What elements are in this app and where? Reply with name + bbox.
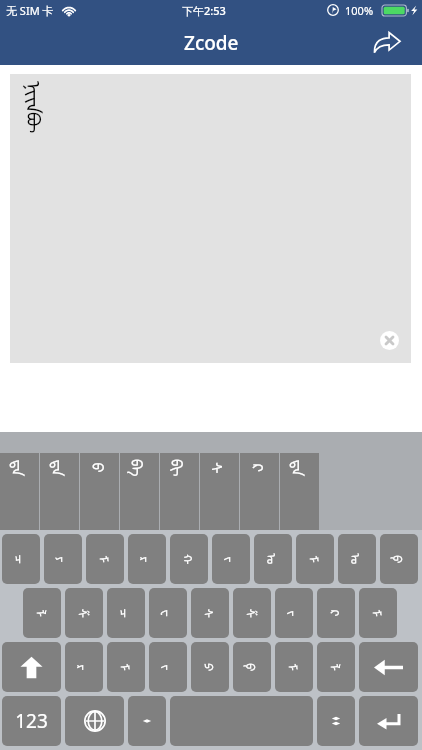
- button[interactable]: ᠺ: [240, 453, 279, 530]
- button[interactable]: ᠺ: [317, 588, 355, 638]
- staticText: ᠫ: [200, 663, 221, 672]
- button[interactable]: Space: [170, 696, 313, 746]
- button[interactable]: ᠪᠡ: [120, 453, 159, 530]
- button[interactable]: ᠹ: [233, 642, 271, 692]
- staticText: ᠮ: [283, 663, 304, 671]
- button[interactable]: Clear text: [380, 331, 399, 350]
- button[interactable]: ᠳᠡ: [40, 453, 79, 530]
- button[interactable]: ᠵ: [149, 642, 187, 692]
- staticText: ᠮ: [94, 555, 115, 563]
- staticText: ᠱ: [241, 608, 262, 618]
- staticText: ᠹ: [389, 555, 410, 564]
- staticText: ᠵ: [283, 610, 304, 616]
- button[interactable]: ᠯ: [317, 642, 355, 692]
- button[interactable]: Return: [359, 696, 418, 746]
- staticText: ᠳᠠ: [7, 459, 33, 476]
- button[interactable]: ᠬ: [170, 534, 208, 584]
- button[interactable]: ᠯ: [23, 588, 61, 638]
- button[interactable]: Colon: [317, 696, 355, 746]
- staticText: ᠤ: [346, 553, 367, 565]
- button[interactable]: Switch keyboard: [65, 696, 124, 746]
- button[interactable]: ᠳᠠ: [280, 453, 319, 530]
- staticText: ᠮ: [367, 609, 388, 617]
- button[interactable]: ᠰ: [191, 588, 229, 638]
- staticText: ᠷ: [136, 556, 157, 562]
- button[interactable]: ᠵ: [212, 534, 250, 584]
- staticText: ᠰ: [199, 608, 220, 618]
- staticText: ᠨᠢᠢᠨ: [20, 81, 55, 114]
- button[interactable]: ᠮ: [275, 642, 313, 692]
- staticText: ᠴ: [10, 554, 31, 564]
- staticText: ᠪᠡ: [127, 459, 153, 477]
- button[interactable]: Share: [368, 23, 406, 61]
- staticText: ᠳᠡ: [47, 459, 73, 476]
- button[interactable]: ᠤ: [338, 534, 376, 584]
- staticText: ᠶ: [52, 556, 73, 562]
- button[interactable]: ᠮ: [86, 534, 124, 584]
- staticText: ᠮ: [115, 663, 136, 671]
- staticText: 下午2:53: [182, 3, 226, 18]
- button[interactable]: ᠣ: [254, 534, 292, 584]
- staticText: ᠹ: [242, 663, 263, 672]
- button[interactable]: ᠪᠢ: [160, 453, 199, 530]
- button[interactable]: Shift: [2, 642, 61, 692]
- staticText: 123: [15, 708, 48, 734]
- staticText: ᠴ: [115, 608, 136, 618]
- staticText: ᠰ: [207, 462, 233, 474]
- staticText: ᠬ: [179, 554, 200, 565]
- staticText: ᠪ: [87, 462, 113, 473]
- button[interactable]: ᠴ: [107, 588, 145, 638]
- button[interactable]: ᠶ: [44, 534, 82, 584]
- button[interactable]: ᠱ: [233, 588, 271, 638]
- button[interactable]: Backspace: [359, 642, 418, 692]
- button[interactable]: 123: [2, 696, 61, 746]
- button[interactable]: ᠵ: [275, 588, 313, 638]
- staticText: ᠮ: [304, 555, 325, 563]
- staticText: ᠪᠢ: [167, 459, 193, 477]
- button[interactable]: ᠱ: [65, 588, 103, 638]
- staticText: ᠸ: [157, 609, 178, 617]
- staticText: ᠯ: [325, 663, 346, 671]
- staticText: ᠵ: [157, 664, 178, 670]
- button[interactable]: ᠮ: [107, 642, 145, 692]
- staticText: ᠵ: [220, 556, 241, 562]
- button[interactable]: ᠫ: [191, 642, 229, 692]
- button[interactable]: Dot: [128, 696, 166, 746]
- button[interactable]: ᠷ: [65, 642, 103, 692]
- button[interactable]: ᠳᠠ: [0, 453, 39, 530]
- staticText: ᠪᠥ: [21, 112, 53, 134]
- button[interactable]: ᠹ: [380, 534, 418, 584]
- button[interactable]: ᠸ: [149, 588, 187, 638]
- button[interactable]: ᠷ: [128, 534, 166, 584]
- button[interactable]: ᠰ: [200, 453, 239, 530]
- staticText: ᠷ: [73, 664, 94, 670]
- staticText: ᠣ: [262, 553, 283, 565]
- button[interactable]: ᠪ: [80, 453, 119, 530]
- button[interactable]: ᠮ: [359, 588, 397, 638]
- staticText: ᠱ: [73, 608, 94, 618]
- button[interactable]: ᠴ: [2, 534, 40, 584]
- staticText: ᠺ: [247, 463, 273, 472]
- staticText: 100%: [345, 3, 374, 18]
- staticText: 无 SIM 卡: [6, 3, 54, 18]
- button[interactable]: ᠮ: [296, 534, 334, 584]
- staticText: Zcode: [184, 30, 239, 56]
- staticText: ᠯ: [31, 609, 52, 617]
- staticText: ᠳᠠ: [287, 459, 313, 476]
- staticText: ᠺ: [326, 610, 347, 617]
